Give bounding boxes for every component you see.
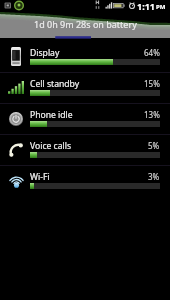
- button[interactable]: Voice calls: [0, 134, 170, 165]
- staticText: Wi-Fi: [30, 171, 50, 183]
- staticText: 15%: [144, 78, 160, 89]
- staticText: PM: [156, 3, 166, 11]
- button[interactable]: Wi-Fi: [0, 165, 170, 196]
- button[interactable]: Cell standby: [0, 72, 170, 103]
- button[interactable]: Display: [0, 41, 170, 72]
- staticText: 64%: [144, 47, 160, 58]
- staticText: Cell standby: [30, 78, 80, 90]
- staticText: 13%: [144, 109, 160, 120]
- staticText: Phone idle: [30, 109, 73, 121]
- staticText: 1d 0h 9m 28s on battery: [34, 18, 137, 30]
- staticText: Voice calls: [30, 140, 72, 152]
- staticText: 1:11: [137, 0, 155, 12]
- button[interactable]: Phone idle: [0, 103, 170, 134]
- staticText: Display: [30, 47, 60, 59]
- staticText: 3%: [148, 171, 160, 182]
- staticText: 5%: [148, 140, 160, 151]
